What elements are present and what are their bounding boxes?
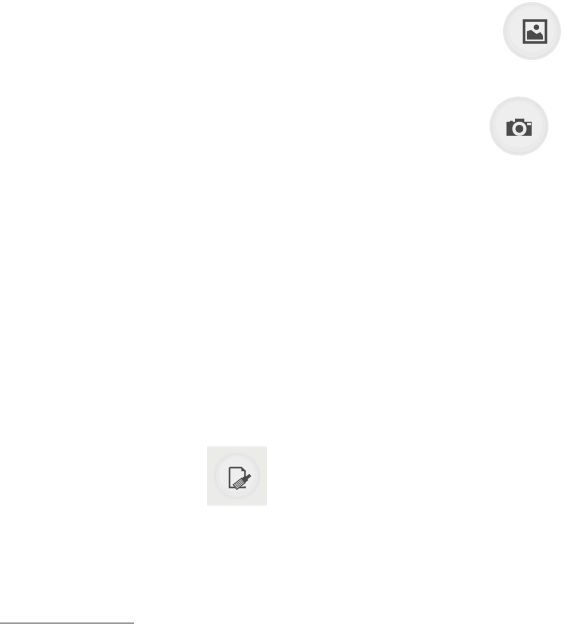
button[interactable]: Format document [207, 446, 267, 505]
button[interactable]: Insert image [503, 2, 561, 60]
button[interactable]: Take photo [489, 96, 548, 155]
